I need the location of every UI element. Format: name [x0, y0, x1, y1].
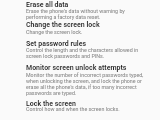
button[interactable]: Change the screen lock — [0, 20, 160, 39]
staticText: Erase the phone's data without warning b… — [26, 8, 125, 20]
button[interactable]: Lock the screen — [0, 98, 160, 120]
staticText: Set password rules — [26, 40, 87, 48]
staticText: Control the length and the characters al… — [26, 47, 139, 59]
staticText: Change the screen lock — [26, 21, 100, 29]
staticText: Monitor screen unlock attempts — [26, 64, 127, 72]
staticText: Change the screen lock. — [26, 29, 83, 35]
staticText: Monitor the number of incorrect password… — [26, 72, 144, 96]
staticText: Control how and when the screen locks. — [26, 106, 120, 112]
button[interactable]: Set password rules — [0, 39, 160, 62]
staticText: Erase all data — [26, 1, 69, 9]
staticText: Lock the screen — [26, 100, 76, 108]
button[interactable]: Monitor screen unlock attempts — [0, 62, 160, 98]
button[interactable]: Erase all data — [0, 0, 160, 20]
